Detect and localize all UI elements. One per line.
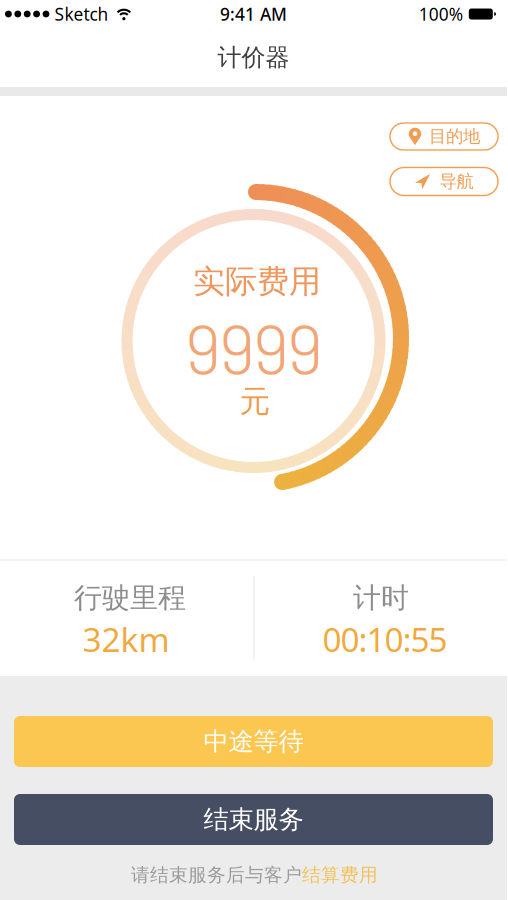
staticText: 目的地 xyxy=(429,126,480,147)
staticText: 请结束服务后与客户 xyxy=(131,863,302,886)
staticText: 中途等待 xyxy=(203,726,303,757)
staticText: 实际费用 xyxy=(193,262,321,301)
staticText: 9999 xyxy=(185,305,323,388)
staticText: 计价器 xyxy=(217,43,289,72)
staticText: 32km xyxy=(82,617,169,661)
staticText: 计时 xyxy=(353,581,409,615)
button[interactable]: 结束服务 xyxy=(14,794,493,845)
staticText: 100% xyxy=(419,2,463,25)
staticText: 结算费用 xyxy=(302,863,378,886)
staticText: 00:10:55 xyxy=(322,617,447,661)
staticText: Sketch xyxy=(54,2,108,25)
staticText: 元 xyxy=(239,383,270,420)
staticText: 9:41 AM xyxy=(220,2,287,25)
button[interactable]: 中途等待 xyxy=(14,716,493,767)
button[interactable]: 导航 xyxy=(390,167,498,195)
staticText: 结束服务 xyxy=(203,804,303,835)
staticText: 行驶里程 xyxy=(74,581,186,615)
button[interactable]: 目的地 xyxy=(390,123,498,150)
staticText: 导航 xyxy=(439,171,473,192)
